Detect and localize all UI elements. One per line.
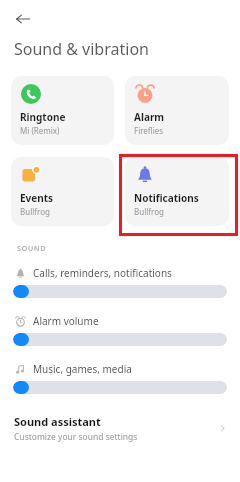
staticText: Mi (Remix) [20,125,60,136]
staticText: Customize your sound settings [14,431,138,443]
button[interactable]: Sound assistant [0,411,240,446]
staticText: Calls, reminders, notifications [33,266,172,280]
staticText: Bullfrog [20,206,50,217]
button[interactable]: Back [10,6,36,32]
staticText: Bullfrog [134,206,164,217]
button[interactable]: Alarm [125,76,229,145]
button[interactable]: Notifications [125,157,229,226]
button[interactable]: Calls, reminders, notifications [0,266,240,298]
button[interactable]: Ringtone [11,76,114,145]
staticText: Fireflies [134,125,164,136]
button[interactable]: Music, games, media [0,362,240,394]
staticText: Alarm volume [33,314,99,328]
staticText: Alarm [134,110,165,124]
staticText: SOUND [17,244,47,254]
staticText: Sound & vibration [14,38,149,60]
staticText: Ringtone [20,110,66,124]
staticText: Sound assistant [14,414,101,429]
button[interactable]: Events [11,157,114,226]
staticText: Music, games, media [33,362,132,376]
button[interactable]: Alarm volume [0,314,240,346]
staticText: Notifications [134,191,199,205]
staticText: Events [20,191,54,205]
